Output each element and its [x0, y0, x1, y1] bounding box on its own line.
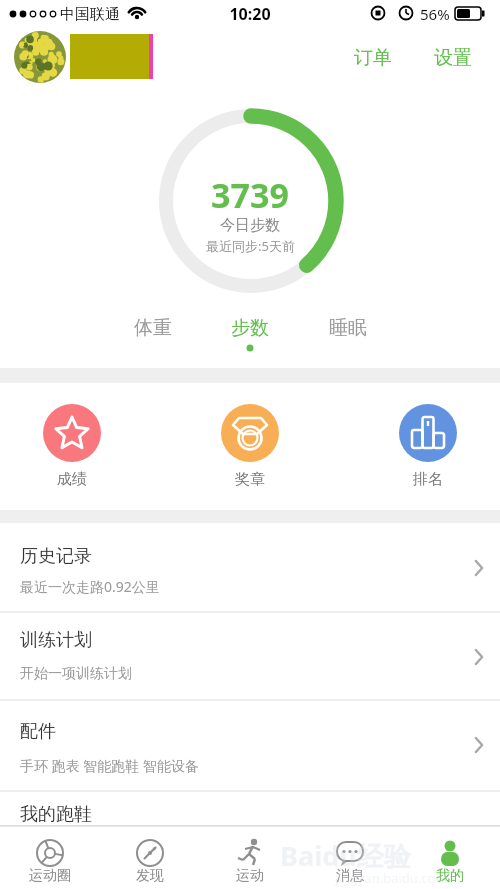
staticText: 训练计划	[20, 629, 92, 652]
staticText: 我的	[436, 867, 464, 885]
staticText: 睡眠	[329, 316, 367, 340]
button[interactable]: 设置	[425, 40, 480, 76]
staticText: jingyan.baidu.com	[335, 869, 448, 887]
button[interactable]	[221, 404, 279, 462]
button[interactable]: 睡眠	[308, 310, 388, 346]
button[interactable]: 配件	[0, 700, 500, 791]
staticText: 奖章	[235, 470, 265, 489]
button[interactable]: 训练计划	[0, 612, 500, 700]
staticText: 10:20	[229, 3, 271, 25]
staticText: 配件	[20, 720, 56, 743]
button[interactable]: 步数	[210, 310, 290, 346]
staticText: 设置	[434, 46, 472, 70]
staticText: 中国联通	[60, 5, 120, 24]
button[interactable]	[399, 404, 457, 462]
staticText: 消息	[336, 867, 364, 885]
button[interactable]: 我的跑鞋	[0, 791, 500, 825]
staticText: 运动	[236, 867, 264, 885]
staticText: 3739	[211, 172, 289, 212]
staticText: 发现	[136, 867, 164, 885]
staticText: 最近同步:5天前	[206, 237, 295, 255]
staticText: 我的跑鞋	[20, 803, 92, 826]
button[interactable]: 历史记录	[0, 523, 500, 612]
button[interactable]	[300, 825, 400, 889]
staticText: 最近一次走路0.92公里	[20, 577, 160, 596]
button[interactable]	[200, 825, 300, 889]
button[interactable]	[100, 825, 200, 889]
staticText: 手环 跑表 智能跑鞋 智能设备	[20, 756, 199, 775]
staticText: 开始一项训练计划	[20, 665, 132, 683]
staticText: 排名	[413, 470, 443, 489]
button[interactable]: 体重	[113, 310, 193, 346]
staticText: 步数	[231, 316, 269, 340]
staticText: 今日步数	[220, 216, 280, 235]
staticText: Baidu经验	[280, 837, 411, 874]
staticText: 历史记录	[20, 545, 92, 568]
staticText: 运动圈	[29, 867, 71, 885]
button[interactable]	[0, 825, 100, 889]
staticText: 成绩	[57, 470, 87, 489]
staticText: 体重	[134, 316, 172, 340]
button[interactable]	[400, 825, 500, 889]
staticText: 订单	[354, 46, 392, 70]
button[interactable]: 订单	[345, 40, 400, 76]
button[interactable]	[43, 404, 101, 462]
staticText: 56%	[420, 4, 450, 24]
